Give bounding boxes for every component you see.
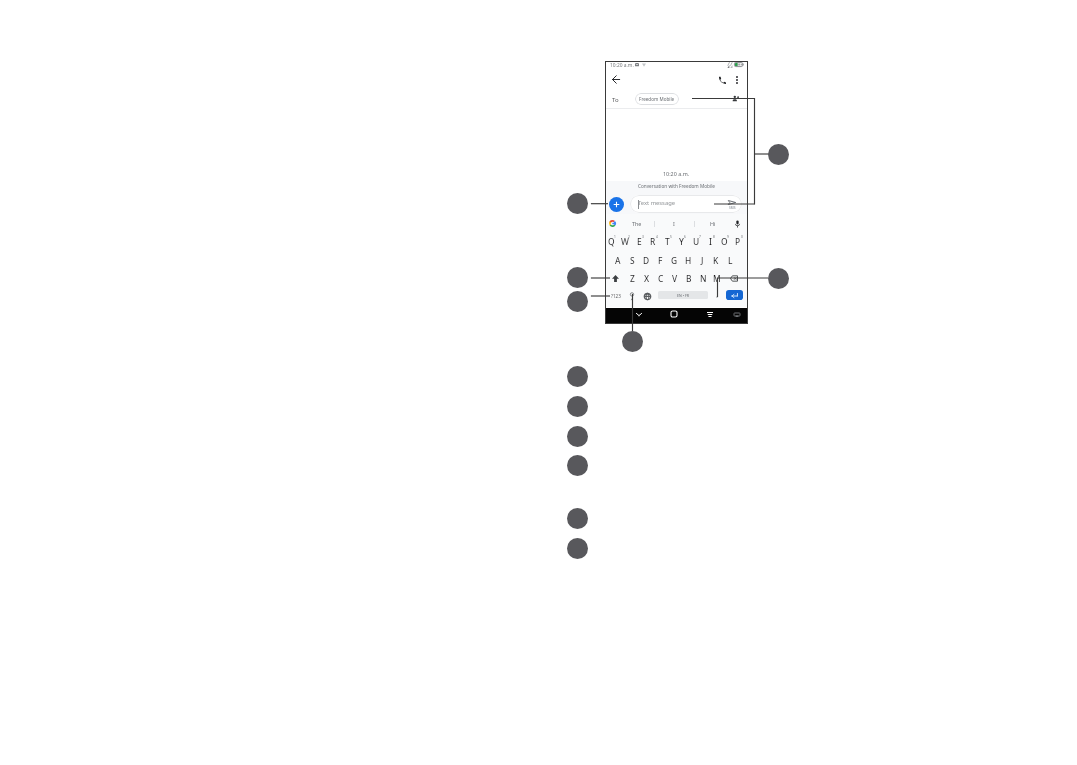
staticText: N [700,273,707,284]
staticText: M [713,273,721,284]
button[interactable]: Callout marker [567,366,588,387]
staticText: EN • FR [677,293,690,298]
button[interactable]: H [681,251,695,270]
button[interactable]: Enter [726,290,743,300]
button[interactable]: X [640,269,654,288]
button[interactable]: Callout marker [567,396,588,417]
button[interactable]: P [731,232,745,251]
button[interactable]: I [664,219,684,228]
button[interactable]: Recent apps [704,308,716,320]
button[interactable]: Y [674,232,688,251]
button[interactable]: I [703,232,717,251]
button[interactable]: Callout marker [622,331,643,352]
staticText: The [632,220,642,227]
button[interactable]: Backspace [727,269,741,288]
staticText: H [685,255,692,266]
button[interactable]: Callout marker [567,193,588,214]
staticText: G [671,255,678,266]
button[interactable]: The [627,219,647,228]
staticText: Y [679,236,684,247]
button[interactable]: Callout marker [567,267,588,288]
button[interactable]: Callout marker [768,268,789,289]
staticText: Conversation with Freedom Mobile [638,183,716,189]
button[interactable]: O [717,232,731,251]
button[interactable]: Space [658,291,708,299]
button[interactable]: Back [608,72,623,87]
button[interactable]: Callout marker [567,291,588,312]
button[interactable]: Z [625,269,639,288]
button[interactable]: Home [668,308,680,320]
button[interactable]: Freedom Mobile [635,93,679,105]
button[interactable]: More options [732,75,742,85]
button[interactable]: Callout marker [567,426,588,447]
button[interactable]: L [723,251,737,270]
staticText: J [701,255,704,266]
button[interactable]: Period [712,290,722,302]
staticText: 5 [670,235,672,239]
staticText: 10:20 a.m. [663,170,690,177]
staticText: U [693,236,700,247]
button[interactable]: Comma [627,290,637,302]
staticText: F [658,255,663,266]
button[interactable]: Hide keyboard [633,308,645,320]
button[interactable]: Hi [703,219,723,228]
button[interactable]: B [682,269,696,288]
button[interactable]: Callout marker [567,455,588,476]
staticText: 1 [614,235,616,239]
staticText: O [721,236,728,247]
staticText: 7 [699,235,701,239]
button[interactable]: Text message [630,195,742,213]
staticText: B [686,273,692,284]
button[interactable]: Voice input [733,219,742,229]
button[interactable]: Callout marker [567,538,588,559]
staticText: V [672,273,678,284]
button[interactable]: U [689,232,703,251]
staticText: Hi [710,220,716,227]
staticText: T [665,236,670,247]
staticText: A [615,255,621,266]
button[interactable]: M [710,269,724,288]
button[interactable]: Change language [642,290,652,302]
button[interactable]: F [653,251,667,270]
button[interactable]: Callout marker [768,144,789,165]
button[interactable]: Q [604,232,618,251]
staticText: 3 [642,235,644,239]
button[interactable]: E [632,232,646,251]
staticText: K [713,255,719,266]
staticText: 4 [656,235,658,239]
staticText: D [643,255,650,266]
staticText: L [728,255,733,266]
button[interactable]: Shift [608,269,622,288]
button[interactable]: D [639,251,653,270]
staticText: Z [630,273,635,284]
staticText: SMS [729,206,736,210]
button[interactable]: J [695,251,709,270]
button[interactable]: C [654,269,668,288]
button[interactable]: ?123 [608,290,623,302]
staticText: 0 [741,235,743,239]
button[interactable]: Switch keyboard [731,309,743,321]
staticText: S [630,255,635,266]
button[interactable]: Callout marker [567,508,588,529]
button[interactable]: T [660,232,674,251]
button[interactable]: Add recipient [728,91,743,106]
button[interactable]: Send SMS [725,197,740,212]
staticText: 2 [628,235,630,239]
staticText: W [621,236,629,247]
button[interactable]: Add attachment [609,197,624,212]
staticText: 9 [727,235,729,239]
staticText: Freedom Mobile [639,96,675,102]
button[interactable]: S [625,251,639,270]
staticText: Q [608,236,615,247]
button[interactable]: W [618,232,632,251]
button[interactable]: G [667,251,681,270]
button[interactable]: V [668,269,682,288]
button[interactable]: Call [717,75,727,85]
button[interactable]: R [646,232,660,251]
button[interactable]: N [696,269,710,288]
staticText: 6 [684,235,686,239]
staticText: 10:20 a.m. [610,62,634,69]
button[interactable]: A [611,251,625,270]
staticText: P [735,236,741,247]
button[interactable]: K [709,251,723,270]
